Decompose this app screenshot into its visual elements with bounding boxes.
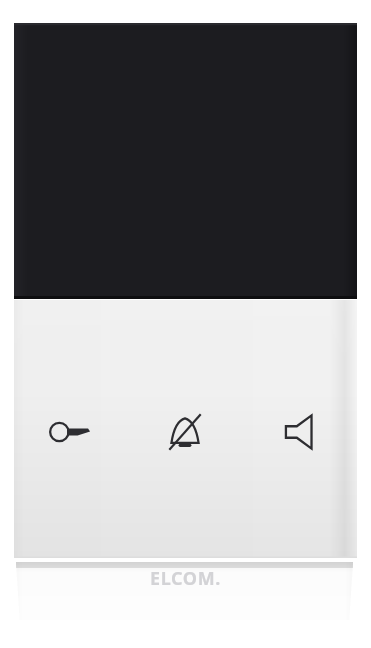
button[interactable]: Speaker volume	[266, 398, 334, 466]
button[interactable]: Door opener	[36, 398, 104, 466]
staticText: ELCOM.	[0, 566, 371, 636]
button[interactable]: Mute ringer	[151, 398, 219, 466]
